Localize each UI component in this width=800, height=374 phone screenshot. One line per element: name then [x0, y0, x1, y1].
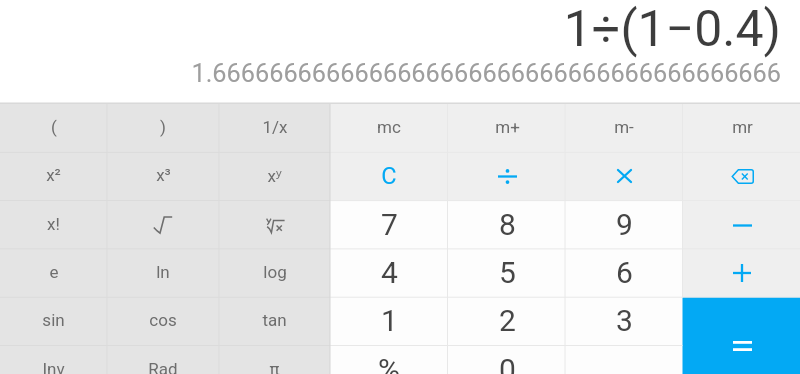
button[interactable]: ln [107, 249, 219, 297]
button[interactable]: 4 [330, 249, 448, 297]
staticText: mc [377, 117, 401, 137]
staticText: 1÷(1−0.4) [0, 0, 781, 59]
button[interactable]: xʸ [219, 152, 330, 200]
button[interactable]: Equals [683, 297, 800, 374]
button[interactable]: Inv [0, 346, 107, 374]
button[interactable]: sin [0, 297, 107, 345]
button[interactable]: 2 [448, 297, 566, 345]
button[interactable]: tan [219, 297, 330, 345]
staticText: 9 [616, 207, 633, 242]
staticText: xʸ [267, 164, 282, 187]
staticText: 7 [381, 207, 398, 242]
button[interactable]: 5 [448, 249, 566, 297]
button[interactable]: 1/x [219, 104, 330, 152]
staticText: 1.66666666666666666666666666666666666666… [0, 59, 781, 89]
button[interactable]: ) [107, 104, 219, 152]
button[interactable]: 7 [330, 201, 448, 249]
button[interactable]: 8 [448, 201, 566, 249]
staticText: cos [149, 310, 177, 330]
button[interactable]: ( [0, 104, 107, 152]
button[interactable]: % [330, 346, 448, 374]
staticText: x! [47, 214, 60, 234]
staticText: 8 [499, 207, 516, 242]
staticText: x² [46, 165, 61, 185]
staticText: % [378, 352, 400, 374]
staticText: 5 [499, 255, 516, 290]
staticText: log [263, 262, 287, 282]
staticText: 3 [616, 303, 633, 338]
staticText: x³ [156, 165, 171, 185]
button[interactable]: m+ [448, 104, 566, 152]
button[interactable]: 1 [330, 297, 448, 345]
button[interactable]: m- [565, 104, 683, 152]
staticText: m+ [495, 117, 520, 137]
staticText: m- [614, 117, 634, 137]
button[interactable]: x! [0, 201, 107, 249]
button[interactable]: e [0, 249, 107, 297]
staticText: 0 [499, 352, 516, 374]
button[interactable]: . [565, 346, 683, 374]
button[interactable]: Rad [107, 346, 219, 374]
button[interactable]: log [219, 249, 330, 297]
staticText: 2 [499, 303, 516, 338]
button[interactable]: C [330, 152, 448, 200]
button[interactable]: Plus [683, 249, 800, 297]
button[interactable]: Minus [683, 201, 800, 249]
staticText: π [269, 359, 280, 374]
staticText: 1/x [262, 117, 288, 137]
button[interactable]: cos [107, 297, 219, 345]
staticText: e [49, 262, 59, 282]
button[interactable]: Multiply [565, 152, 683, 200]
button[interactable]: 0 [448, 346, 566, 374]
staticText: Rad [148, 359, 178, 374]
staticText: 1 [381, 303, 398, 338]
staticText: C [381, 162, 397, 190]
staticText: sin [42, 310, 65, 330]
staticText: ( [51, 117, 57, 137]
staticText: ln [156, 262, 170, 282]
button[interactable]: 6 [565, 249, 683, 297]
staticText: 6 [616, 255, 633, 290]
staticText: tan [262, 310, 287, 330]
button[interactable]: Divide [448, 152, 566, 200]
button[interactable]: root [107, 201, 219, 249]
button[interactable]: 9 [565, 201, 683, 249]
button[interactable]: x³ [107, 152, 219, 200]
button[interactable]: 3 [565, 297, 683, 345]
button[interactable]: mc [330, 104, 448, 152]
staticText: ) [160, 117, 166, 137]
button[interactable]: root [219, 201, 330, 249]
staticText: 4 [381, 255, 398, 290]
button[interactable]: Delete [683, 152, 800, 200]
button[interactable]: mr [683, 104, 800, 152]
staticText: mr [732, 117, 753, 137]
button[interactable]: x² [0, 152, 107, 200]
button[interactable]: π [219, 346, 330, 374]
staticText: Inv [42, 359, 65, 374]
